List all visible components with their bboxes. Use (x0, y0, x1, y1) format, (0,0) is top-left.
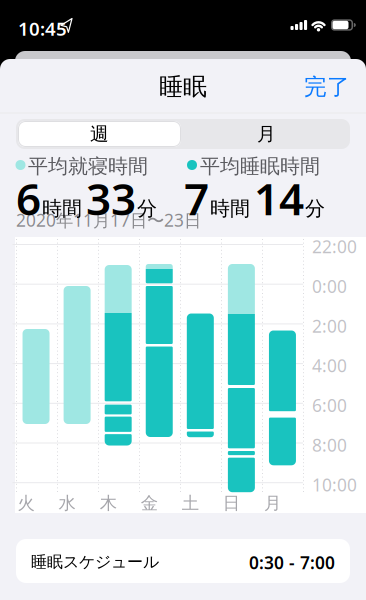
button[interactable]: 週 (18, 121, 181, 147)
staticText: 月 (257, 122, 276, 145)
staticText: 4:00 (312, 354, 347, 377)
staticText: 10:00 (312, 473, 357, 496)
staticText: 7 (184, 169, 209, 227)
staticText: 月 (264, 492, 281, 514)
staticText: 2:00 (312, 314, 347, 337)
staticText: 木 (100, 492, 117, 514)
staticText: 6 (16, 169, 41, 227)
staticText: 33 (86, 169, 136, 227)
staticText: 6:00 (312, 394, 347, 417)
staticText: 2020年11月17日〜23日 (16, 208, 201, 231)
staticText: 時間 (42, 196, 82, 221)
staticText: 睡眠 (159, 72, 207, 101)
staticText: 10:45 (18, 16, 67, 41)
button[interactable]: 完了 (304, 73, 366, 101)
staticText: 金 (141, 492, 158, 514)
staticText: 火 (17, 492, 34, 514)
staticText: 分 (137, 196, 157, 221)
staticText: 水 (59, 492, 76, 514)
staticText: 時間 (210, 196, 250, 221)
staticText: 22:00 (312, 235, 357, 258)
button[interactable]: 睡眠スケジュール (16, 539, 350, 583)
staticText: 平均睡眠時間 (200, 154, 320, 179)
staticText: 8:00 (312, 433, 347, 456)
staticText: 0:00 (312, 275, 347, 298)
staticText: 14 (254, 169, 304, 227)
staticText: 週 (90, 122, 109, 145)
staticText: 日 (223, 492, 240, 514)
staticText: 完了 (304, 73, 350, 101)
staticText: 平均就寝時間 (28, 154, 148, 179)
staticText: 分 (305, 196, 325, 221)
staticText: 土 (182, 492, 199, 514)
staticText: 睡眠スケジュール (31, 552, 159, 572)
staticText: 0:30 - 7:00 (249, 551, 335, 574)
button[interactable]: 月 (185, 121, 348, 147)
